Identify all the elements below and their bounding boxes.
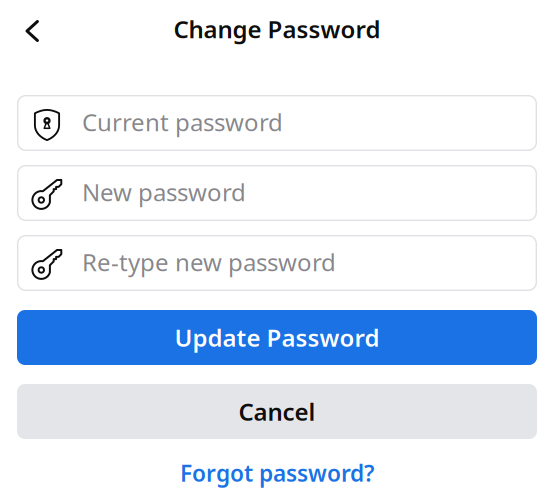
staticText: Change Password	[173, 13, 380, 45]
button[interactable]: Re-type new password	[17, 235, 537, 291]
staticText: Cancel	[238, 396, 315, 427]
button[interactable]: Update Password	[17, 310, 537, 365]
staticText: Current password	[82, 106, 283, 138]
button[interactable]: Back	[15, 9, 50, 48]
button[interactable]: Current password	[17, 95, 537, 151]
button[interactable]: New password	[17, 165, 537, 221]
button[interactable]: Cancel	[17, 384, 537, 439]
button[interactable]: Forgot password?	[168, 451, 386, 495]
staticText: New password	[82, 176, 246, 208]
staticText: Update Password	[174, 322, 379, 353]
staticText: Forgot password?	[180, 458, 374, 488]
staticText: Re-type new password	[82, 246, 336, 278]
